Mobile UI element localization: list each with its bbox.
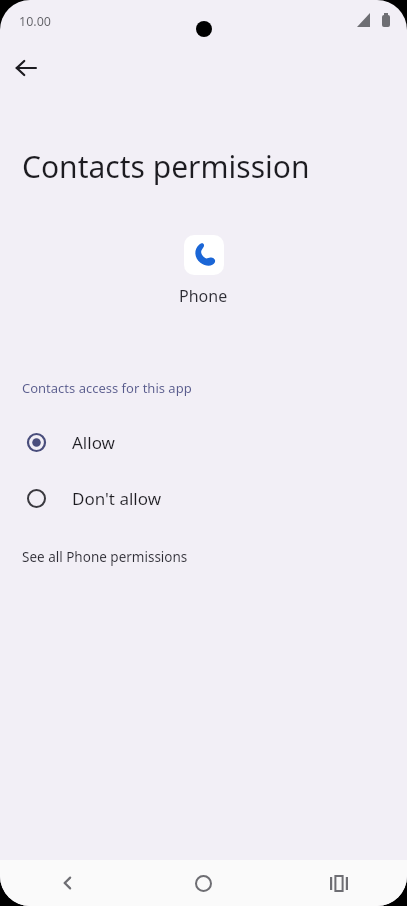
button[interactable]: Allow — [0, 414, 407, 470]
button[interactable]: Back — [6, 48, 46, 88]
button[interactable]: Home — [135, 860, 271, 906]
button[interactable]: See all Phone permissions — [0, 538, 407, 576]
staticText: Allow — [72, 431, 115, 454]
button[interactable]: Don't allow — [0, 470, 407, 526]
button[interactable]: Back — [0, 860, 135, 906]
staticText: 10.00 — [19, 13, 51, 30]
staticText: See all Phone permissions — [22, 548, 188, 566]
staticText: Don't allow — [72, 487, 162, 510]
staticText: Contacts access for this app — [22, 379, 192, 397]
staticText: Phone — [179, 285, 228, 307]
staticText: Contacts permission — [22, 146, 310, 187]
button[interactable]: Recent apps — [271, 860, 407, 906]
